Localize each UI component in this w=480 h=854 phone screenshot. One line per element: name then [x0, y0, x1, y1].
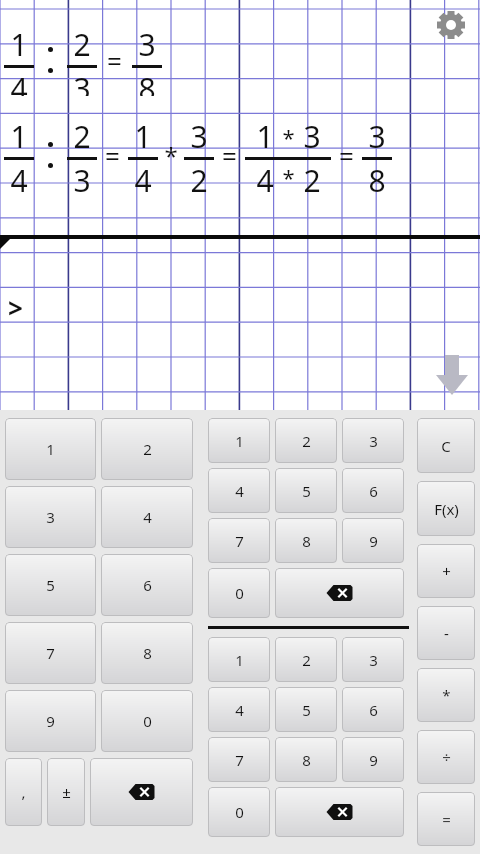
button[interactable]: 9 [5, 690, 96, 752]
staticText: 2 [302, 431, 311, 451]
staticText: 7 [235, 750, 244, 770]
staticText: > [8, 290, 23, 325]
button[interactable]: ± [47, 758, 85, 826]
staticText: 0 [143, 711, 152, 731]
staticText: 4 [143, 507, 152, 527]
button[interactable]: 0 [208, 568, 270, 618]
staticText: 1 [235, 431, 244, 451]
button[interactable]: 1 [5, 418, 96, 480]
staticText: = [107, 43, 122, 78]
staticText: = [105, 138, 120, 173]
button[interactable]: 7 [208, 518, 270, 563]
button[interactable]: 0 [208, 787, 270, 837]
staticText: 2 [302, 650, 311, 670]
button[interactable]: 8 [275, 737, 337, 782]
staticText: 6 [369, 700, 378, 720]
button[interactable]: 7 [208, 737, 270, 782]
button[interactable]: 1 [208, 418, 270, 463]
button[interactable]: 3 [342, 637, 404, 682]
staticText: 5 [302, 700, 311, 720]
button[interactable]: Backspace [275, 787, 404, 837]
staticText: - [444, 623, 449, 643]
staticText: 4 [10, 160, 28, 194]
staticText: 4 [235, 481, 244, 501]
button[interactable]: 7 [5, 622, 96, 684]
staticText: 9 [369, 531, 378, 551]
button[interactable]: Backspace [90, 758, 193, 826]
staticText: 1 [46, 439, 55, 459]
staticText: = [442, 809, 451, 829]
staticText: 3 [368, 116, 386, 157]
button[interactable]: 3 [342, 418, 404, 463]
staticText: = [222, 138, 237, 173]
staticText: 7 [46, 643, 55, 663]
staticText: 2 [73, 24, 91, 65]
staticText: * [164, 139, 178, 172]
staticText: C [441, 436, 451, 456]
staticText: 3 [73, 68, 91, 96]
button[interactable]: 2 [101, 418, 193, 480]
staticText: 9 [46, 711, 55, 731]
button[interactable]: 8 [101, 622, 193, 684]
staticText: 4 [10, 68, 28, 96]
button[interactable]: F(x) [417, 481, 475, 536]
staticText: 6 [143, 575, 152, 595]
button[interactable]: , [5, 758, 42, 826]
button[interactable]: 9 [342, 737, 404, 782]
button[interactable]: 2 [275, 637, 337, 682]
button[interactable]: 3 [5, 486, 96, 548]
staticText: 0 [235, 802, 244, 822]
staticText: 4 [235, 700, 244, 720]
staticText: 1 [235, 650, 244, 670]
button[interactable]: 6 [342, 687, 404, 732]
staticText: 3 [46, 507, 55, 527]
staticText: * [282, 122, 295, 152]
button[interactable]: 5 [5, 554, 96, 616]
staticText: 3 [369, 431, 378, 451]
button[interactable]: 4 [101, 486, 193, 548]
button[interactable]: ÷ [417, 730, 475, 784]
button[interactable]: 6 [101, 554, 193, 616]
button[interactable]: 4 [208, 468, 270, 513]
staticText: 2 [73, 116, 91, 157]
staticText: 1 [256, 116, 274, 157]
button[interactable]: 0 [101, 690, 193, 752]
button[interactable]: C [417, 418, 475, 473]
staticText: 9 [369, 750, 378, 770]
button[interactable]: 5 [275, 468, 337, 513]
button[interactable]: 6 [342, 468, 404, 513]
button[interactable]: * [417, 668, 475, 722]
staticText: 2 [303, 160, 321, 194]
button[interactable]: 8 [275, 518, 337, 563]
staticText: * [442, 685, 451, 705]
button[interactable]: 9 [342, 518, 404, 563]
staticText: 5 [46, 575, 55, 595]
staticText: 8 [138, 68, 156, 96]
button[interactable]: 5 [275, 687, 337, 732]
staticText: F(x) [434, 499, 459, 519]
button[interactable]: - [417, 606, 475, 660]
staticText: 6 [369, 481, 378, 501]
staticText: 1 [10, 24, 28, 65]
staticText: 8 [302, 750, 311, 770]
staticText: 0 [235, 583, 244, 603]
staticText: 2 [190, 160, 208, 194]
button[interactable]: Backspace [275, 568, 404, 618]
button[interactable]: 2 [275, 418, 337, 463]
staticText: * [282, 162, 295, 192]
button[interactable]: 4 [208, 687, 270, 732]
staticText: 2 [143, 439, 152, 459]
staticText: 1 [10, 116, 28, 157]
button[interactable]: = [417, 792, 475, 846]
staticText: 1 [134, 116, 152, 157]
staticText: = [339, 138, 354, 173]
staticText: 3 [303, 116, 321, 157]
button[interactable]: 1 [208, 637, 270, 682]
staticText: 3 [138, 24, 156, 65]
staticText: 3 [369, 650, 378, 670]
staticText: ± [62, 782, 71, 802]
button[interactable]: + [417, 544, 475, 598]
staticText: 7 [235, 531, 244, 551]
staticText: 4 [134, 160, 152, 194]
staticText: 3 [73, 160, 91, 194]
